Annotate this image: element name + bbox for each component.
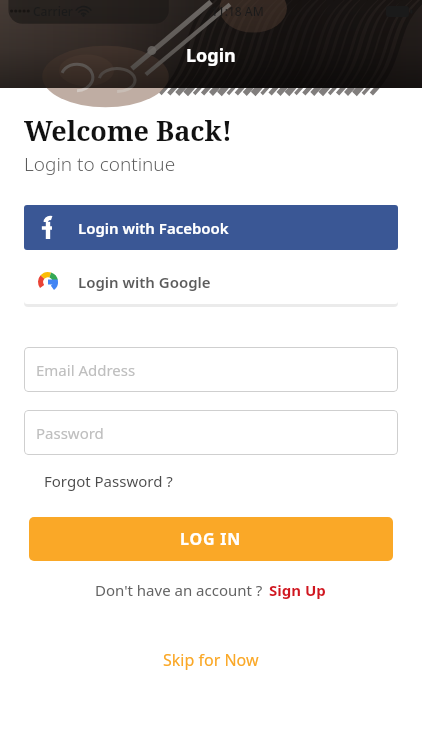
staticText: Email Address [36,360,136,380]
staticText: Login with Facebook [78,218,229,238]
staticText: Login [186,43,236,68]
button[interactable]: Login with Google [24,260,398,304]
staticText: Skip for Now [163,649,259,671]
staticText: Forgot Password ? [44,471,173,491]
staticText: Don't have an account ? [95,580,267,600]
button[interactable]: Forgot Password ? [40,467,177,495]
button[interactable]: LOG IN [29,517,393,561]
staticText: Login to continue [24,151,176,177]
staticText: LOG IN [180,528,242,550]
staticText: Login with Google [78,272,211,292]
staticText: Carrier [33,3,73,19]
button[interactable]: Login with Facebook [24,205,398,250]
staticText: Password [36,423,104,443]
staticText: Sign Up [269,580,326,600]
button[interactable]: Email Address [24,347,398,392]
button[interactable]: Sign Up [267,577,328,603]
button[interactable]: Password [24,410,398,455]
button[interactable]: Skip for Now [151,643,271,677]
staticText: Welcome Back! [24,112,233,149]
staticText: 11:18 AM [211,3,264,19]
